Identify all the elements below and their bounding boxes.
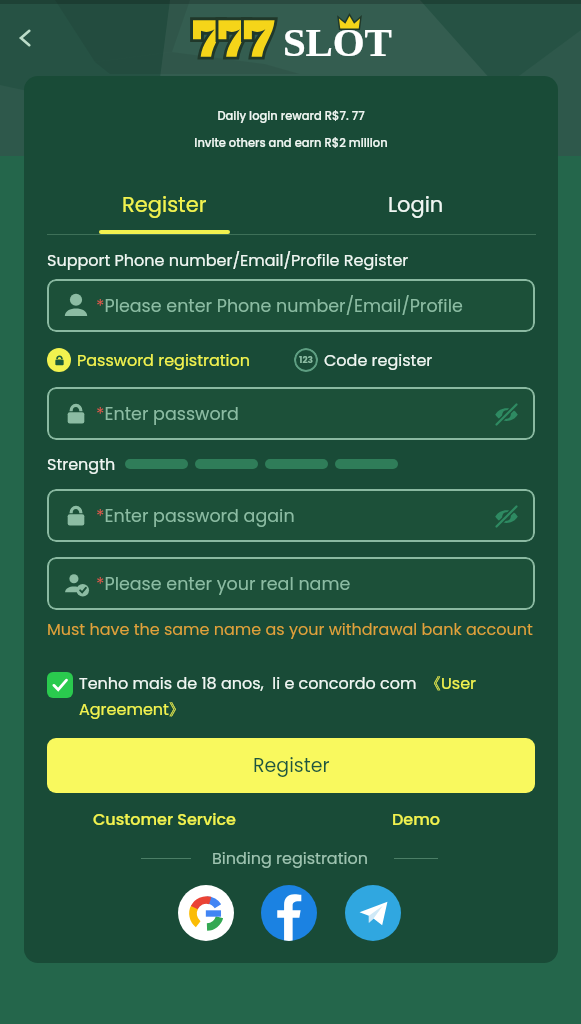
staticText: Login (388, 190, 444, 219)
button[interactable]: Tenho mais de 18 anos, li e concordo com… (47, 672, 535, 721)
staticText: Register (253, 752, 330, 779)
button[interactable]: Toggle password visibility (491, 501, 521, 531)
button[interactable]: Sign in with Telegram (345, 885, 401, 941)
staticText: Binding registration (212, 847, 368, 869)
button[interactable]: Sign in with Facebook (261, 885, 317, 941)
button[interactable]: Sign in with Google (178, 885, 234, 941)
staticText: Register (122, 190, 207, 219)
button[interactable]: Customer Service (84, 805, 244, 833)
staticText: Password registration (77, 349, 251, 371)
staticText: Must have the same name as your withdraw… (47, 618, 533, 640)
staticText: *Enter password again (96, 504, 295, 529)
button[interactable]: 123 (294, 348, 433, 372)
staticText: 123 (299, 354, 313, 367)
staticText: *Enter password (96, 402, 239, 427)
button[interactable]: *Please enter your real name (47, 557, 535, 610)
button[interactable]: Password registration (47, 348, 251, 372)
staticText: Demo (392, 808, 441, 830)
button[interactable]: Login (366, 184, 466, 224)
staticText: *Please enter Phone number/Email/Profile (96, 294, 463, 319)
button[interactable]: Back (3, 16, 47, 60)
staticText: Support Phone number/Email/Profile Regis… (47, 249, 409, 271)
button[interactable]: Toggle password visibility (491, 399, 521, 429)
staticText: Daily login reward R$7. 77 (24, 108, 558, 124)
staticText: Invite others and earn R$2 million (24, 135, 558, 151)
button[interactable]: Register (47, 738, 535, 793)
button[interactable]: *Enter password (47, 387, 535, 440)
staticText: SLOT (283, 19, 392, 64)
button[interactable]: *Enter password again (47, 489, 535, 542)
staticText: Strength (47, 453, 116, 475)
button[interactable]: *Please enter Phone number/Email/Profile (47, 279, 535, 332)
staticText: Customer Service (93, 808, 236, 830)
button[interactable]: Demo (352, 805, 480, 833)
button[interactable]: Register (114, 184, 214, 224)
staticText: *Please enter your real name (96, 572, 351, 597)
staticText: Code register (324, 349, 433, 371)
staticText: Tenho mais de 18 anos, li e concordo com… (79, 672, 535, 721)
